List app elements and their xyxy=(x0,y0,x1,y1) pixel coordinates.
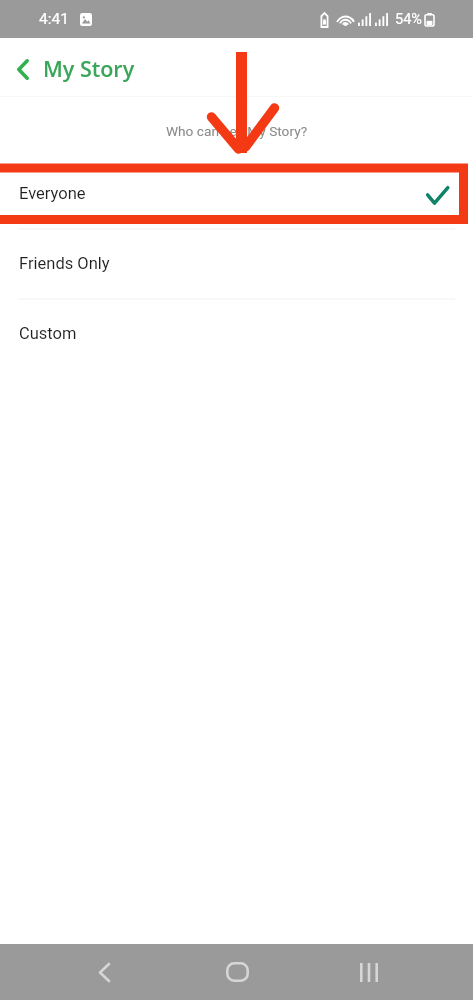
staticText: Custom xyxy=(19,324,77,343)
staticText: Who can see My Story? xyxy=(0,123,473,139)
button[interactable]: Home xyxy=(220,955,254,989)
staticText: My Story xyxy=(43,54,135,83)
button[interactable]: Back xyxy=(0,38,45,96)
staticText: Everyone xyxy=(19,184,86,203)
staticText: Friends Only xyxy=(19,254,110,273)
button[interactable]: Custom xyxy=(0,298,473,368)
button[interactable]: Recent apps xyxy=(353,956,385,988)
button[interactable]: Friends Only xyxy=(0,228,473,298)
staticText: 4:41 xyxy=(39,10,69,28)
button[interactable]: Everyone xyxy=(0,158,473,228)
button[interactable]: Back xyxy=(88,956,120,988)
staticText: 54% xyxy=(395,11,422,28)
